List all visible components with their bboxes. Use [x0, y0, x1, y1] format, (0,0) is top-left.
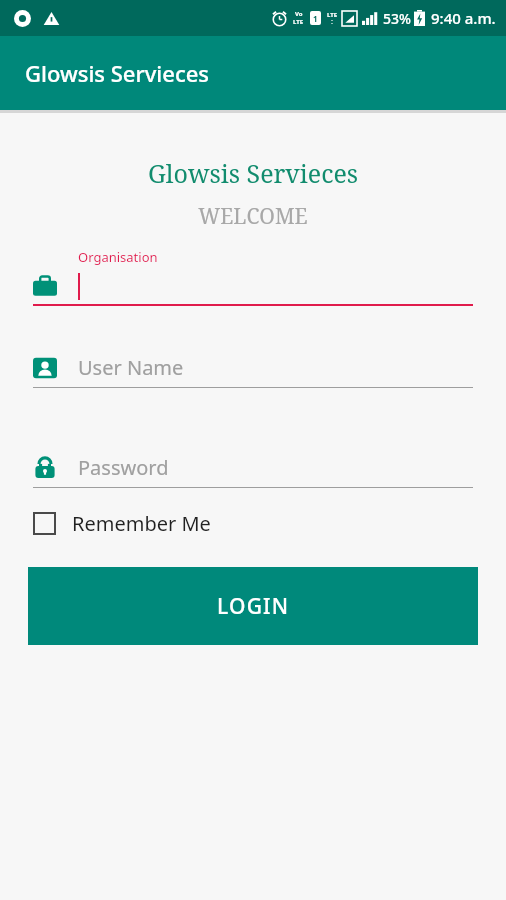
staticText: Organisation [78, 248, 158, 266]
staticText: WELCOME [0, 202, 506, 231]
staticText: User Name [78, 354, 184, 381]
staticText: Password [78, 454, 169, 481]
staticText: Remember Me [72, 510, 211, 537]
button[interactable]: User Name [33, 354, 473, 388]
staticText: Glowsis Servieces [25, 58, 210, 88]
staticText: 1 [313, 13, 318, 24]
button[interactable]: Remember Me [33, 510, 211, 537]
button[interactable]: LOGIN [28, 567, 478, 645]
staticText: Vo [295, 10, 303, 18]
staticText: 53% [383, 9, 411, 28]
staticText: LOGIN [217, 592, 290, 621]
other: Password [33, 456, 57, 480]
staticText: LTE [293, 18, 304, 26]
staticText: 9:40 a.m. [431, 8, 496, 28]
button[interactable]: Password [33, 454, 473, 488]
staticText: ⁚⁚ [331, 19, 334, 26]
other: User Name [33, 356, 57, 380]
button[interactable]: Organisation [33, 248, 473, 306]
other: Organisation [33, 275, 57, 299]
staticText: LTE [327, 11, 338, 19]
staticText: Glowsis Servieces [0, 156, 506, 190]
